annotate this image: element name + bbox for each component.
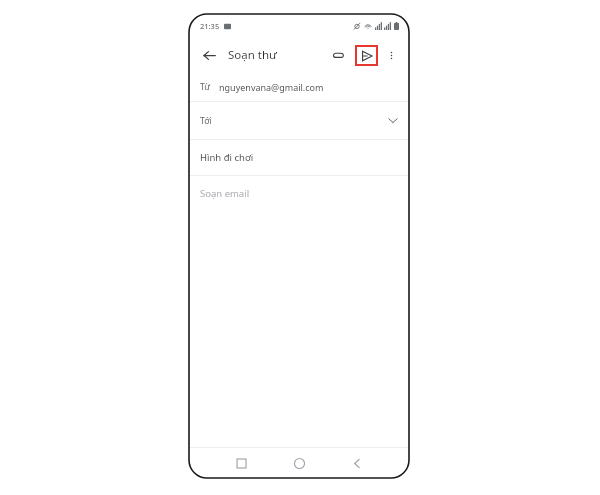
staticText: Soạn email [200,187,250,200]
button[interactable]: Back [345,451,369,475]
button[interactable]: Back [199,45,219,65]
staticText: 21:35 [200,21,220,31]
button[interactable]: Recent apps [229,451,253,475]
button[interactable]: Home [287,451,311,475]
button[interactable]: Send [355,45,378,66]
button[interactable]: Tới [189,102,409,139]
staticText: Soạn thư [228,47,277,63]
button[interactable]: Soạn email [189,176,409,210]
button[interactable]: More options [381,45,401,65]
button[interactable]: Từ [189,72,409,101]
staticText: Hình đi chơi [200,151,254,164]
staticText: Từ [200,81,211,93]
staticText: Tới [200,115,212,127]
button[interactable]: Attach file [327,44,349,66]
staticText: nguyenvana@gmail.com [219,81,324,93]
button[interactable]: Hình đi chơi [189,140,409,175]
